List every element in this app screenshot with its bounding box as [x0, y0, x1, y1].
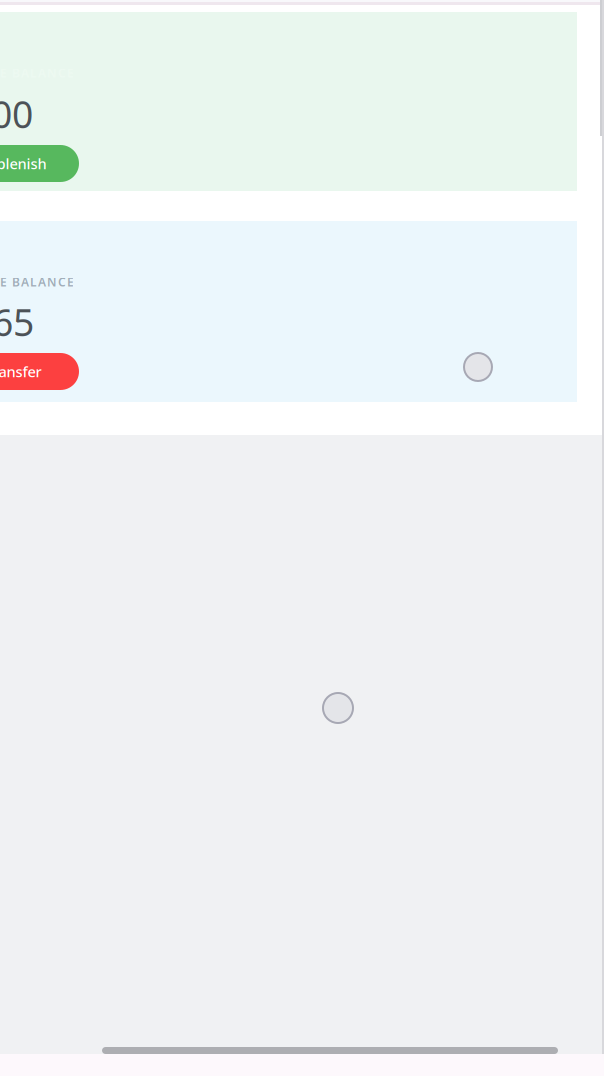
- staticText: 1 265.65: [0, 297, 34, 347]
- button[interactable]: Replenish: [0, 145, 79, 182]
- staticText: Replenish: [0, 154, 46, 173]
- button[interactable]: MOBILE BALANCE: [0, 221, 577, 402]
- staticText: Transfer: [0, 362, 41, 381]
- button[interactable]: MOBILE BALANCE: [0, 12, 577, 191]
- staticText: MOBILE BALANCE: [0, 274, 74, 290]
- button[interactable]: Transfer: [0, 353, 79, 390]
- staticText: 15 300.00: [0, 89, 33, 139]
